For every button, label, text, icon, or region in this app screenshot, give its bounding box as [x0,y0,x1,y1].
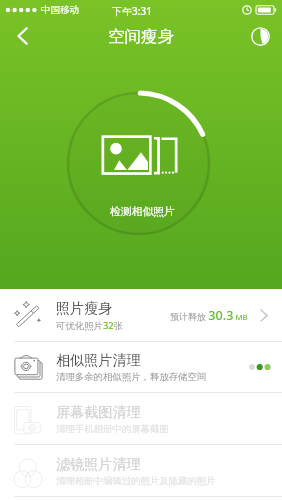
button[interactable]: 相似照片清理 [0,342,282,393]
button[interactable]: 滤镜照片清理 [0,445,282,497]
staticText: 检测相似照片 [110,205,175,219]
staticText: 预计释放 30.3 MB [170,307,248,324]
staticText: 清理多余的相似照片，释放存储空间 [56,371,207,383]
staticText: 可优化照片32张 [56,319,124,332]
staticText: 空间瘦身 [108,26,174,47]
staticText: 滤镜照片清理 [56,455,141,473]
staticText: 屏幕截图清理 [56,403,141,421]
button[interactable]: 屏幕截图清理 [0,393,282,445]
staticText: 清理相册中编辑过的照片及隐藏的照片 [56,475,216,487]
staticText: 下午3:31 [112,4,152,18]
staticText: 照片瘦身 [56,299,113,317]
button[interactable]: Storage usage [238,17,282,55]
staticText: 中国移动 [41,4,79,16]
staticText: 相似照片清理 [56,351,141,369]
button[interactable]: Back [0,17,44,55]
button[interactable]: 照片瘦身 [0,289,282,342]
staticText: 清理手机相册中的屏幕截图 [56,423,169,435]
